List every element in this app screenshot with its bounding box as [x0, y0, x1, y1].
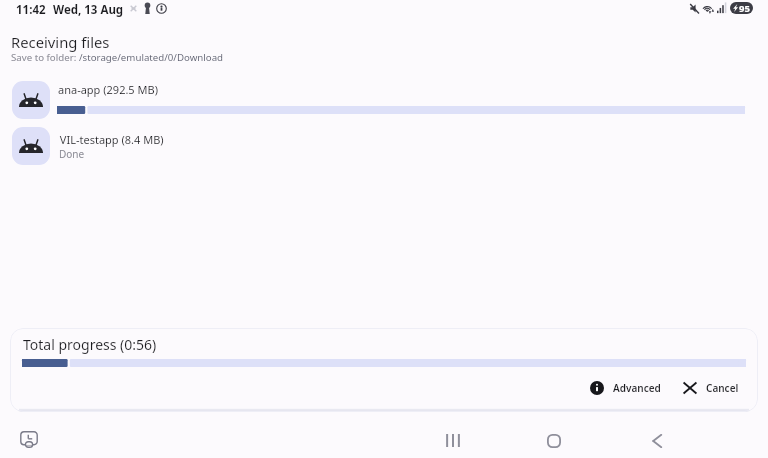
- staticText: Receiving files: [11, 32, 110, 52]
- button[interactable]: Back: [633, 418, 679, 458]
- staticText: 95: [739, 2, 750, 14]
- button[interactable]: Hide keyboard: [8, 420, 48, 458]
- staticText: Total progress (0:56): [23, 335, 157, 354]
- button[interactable]: Home: [531, 418, 577, 458]
- staticText: ana-app (292.5 MB): [58, 82, 158, 97]
- button[interactable]: ana-app (292.5 MB): [0, 78, 768, 122]
- staticText: Done: [59, 147, 85, 161]
- staticText: Cancel: [706, 381, 739, 395]
- staticText: /storage/emulated/0/Download: [79, 51, 224, 64]
- staticText: 11:42: [16, 2, 46, 18]
- staticText: Advanced: [613, 381, 661, 395]
- staticText: VIL-testapp (8.4 MB): [57, 132, 164, 147]
- button[interactable]: Recent apps: [430, 418, 476, 458]
- button[interactable]: VIL-testapp (8.4 MB): [0, 124, 768, 168]
- staticText: Wed, 13 Aug: [53, 2, 124, 18]
- button[interactable]: Cancel: [677, 373, 745, 403]
- staticText: Save to folder:: [11, 51, 79, 64]
- button[interactable]: Advanced: [584, 373, 667, 403]
